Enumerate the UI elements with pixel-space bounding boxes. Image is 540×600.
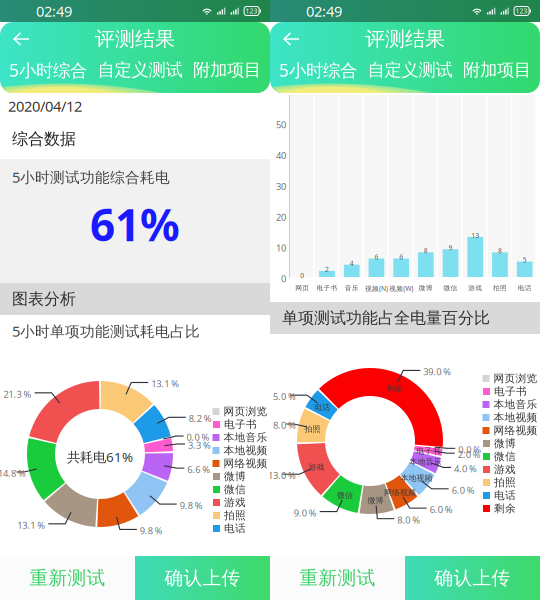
staticText: 13.1 % [151, 377, 179, 390]
staticText: 共耗电61% [67, 448, 133, 466]
staticText: 50 [276, 118, 286, 131]
staticText: 5小时单项功能测试耗电占比 [12, 321, 200, 341]
staticText: 视频(W) [389, 284, 413, 293]
staticText: 6.0 % [452, 484, 475, 496]
staticText: 拍照 [493, 284, 507, 292]
staticText: 0.0 % [187, 431, 210, 443]
staticText: 微博 [224, 470, 246, 483]
staticText: 电话 [518, 284, 532, 292]
staticText: 自定义测试 [97, 59, 182, 81]
staticText: 本地视频 [493, 411, 537, 424]
staticText: 40 [276, 149, 286, 162]
staticText: 剩余 [387, 384, 403, 393]
staticText: 本地音乐 [409, 457, 441, 467]
staticText: 综合数据 [12, 129, 76, 149]
staticText: 5.0 % [273, 390, 296, 403]
staticText: 微信 [337, 490, 353, 500]
button[interactable]: 重新测试 [270, 556, 405, 600]
staticText: 02:49 [36, 1, 72, 21]
button[interactable]: Back [0, 22, 42, 56]
staticText: 13 [471, 231, 479, 240]
staticText: 确认上传 [164, 566, 240, 589]
staticText: 9.8 % [180, 499, 203, 511]
staticText: 30 [276, 180, 286, 192]
staticText: 6 [374, 252, 378, 261]
button[interactable]: Back [270, 22, 312, 56]
staticText: 网络视频 [384, 488, 416, 498]
staticText: 5 [523, 256, 527, 264]
staticText: 电话 [314, 402, 330, 412]
staticText: 14.8 % [0, 467, 26, 479]
staticText: 游戏 [494, 463, 516, 476]
staticText: 13.1 % [17, 519, 45, 531]
staticText: 剩余 [494, 502, 516, 515]
staticText: 8.2 % [189, 412, 212, 425]
button[interactable]: 附加项目 [463, 57, 531, 83]
staticText: 2.0 % [458, 448, 481, 461]
staticText: 单项测试功能占全电量百分比 [282, 308, 490, 328]
staticText: 3.3 % [188, 439, 211, 451]
button[interactable]: 确认上传 [135, 556, 270, 600]
staticText: 4 [350, 259, 354, 268]
staticText: 21.3 % [4, 388, 32, 400]
staticText: 20 [276, 211, 286, 223]
staticText: 6.6 % [187, 463, 210, 475]
staticText: 6 [399, 252, 403, 261]
staticText: 2020/04/12 [8, 96, 82, 116]
button[interactable]: 附加项目 [193, 57, 261, 83]
staticText: 微博 [368, 496, 384, 505]
staticText: 网络视频 [223, 457, 267, 470]
staticText: 网页 [295, 284, 309, 292]
staticText: 图表分析 [12, 289, 76, 309]
staticText: 音乐 [345, 284, 359, 292]
staticText: 游戏 [468, 284, 482, 292]
staticText: 8 [498, 246, 502, 255]
staticText: 61% [90, 195, 180, 253]
staticText: 电话 [494, 489, 516, 502]
staticText: 拍照 [304, 424, 320, 434]
staticText: 5小时综合 [9, 58, 87, 81]
staticText: 游戏 [224, 496, 246, 509]
button[interactable]: 自定义测试 [367, 57, 452, 83]
staticText: 8.0 % [397, 514, 420, 526]
button[interactable]: 确认上传 [405, 556, 540, 600]
staticText: 网页浏览 [493, 372, 537, 385]
staticText: 123 [516, 7, 528, 15]
staticText: 附加项目 [193, 59, 261, 81]
staticText: 网页浏览 [223, 405, 267, 418]
staticText: 微信 [224, 483, 246, 496]
staticText: 0 [300, 271, 304, 280]
staticText: 0.0 % [458, 443, 481, 456]
staticText: 微博 [494, 437, 516, 450]
staticText: 拍照 [224, 509, 246, 522]
staticText: 9 [449, 243, 453, 252]
staticText: 重新测试 [29, 566, 105, 589]
staticText: 网络视频 [493, 424, 537, 437]
staticText: 5小时综合 [279, 58, 357, 81]
staticText: 123 [246, 7, 258, 15]
staticText: 6.0 % [430, 503, 453, 515]
staticText: 本地视频 [401, 473, 433, 483]
staticText: 13.0 % [268, 469, 296, 482]
staticText: 评测结果 [365, 27, 445, 51]
button[interactable]: 自定义测试 [97, 57, 182, 83]
staticText: 5小时测试功能综合耗电 [12, 167, 170, 187]
staticText: 视频(N) [365, 284, 388, 293]
staticText: 拍照 [494, 476, 516, 489]
button[interactable]: 5小时综合 [279, 57, 357, 83]
staticText: 评测结果 [95, 27, 175, 51]
staticText: 39.0 % [423, 365, 451, 378]
staticText: 电子书 [494, 385, 527, 398]
staticText: 电子书 [416, 446, 440, 456]
staticText: 自定义测试 [367, 59, 452, 81]
button[interactable]: 5小时综合 [9, 57, 87, 83]
staticText: 9.0 % [294, 507, 317, 519]
staticText: 微信 [444, 284, 458, 292]
staticText: 8.0 % [273, 419, 296, 431]
staticText: 电话 [224, 522, 246, 535]
staticText: 本地音乐 [223, 431, 267, 444]
staticText: 游戏 [309, 462, 325, 472]
staticText: 确认上传 [434, 566, 510, 589]
button[interactable]: 重新测试 [0, 556, 135, 600]
staticText: 电子书 [317, 284, 338, 292]
